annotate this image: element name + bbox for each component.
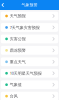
button[interactable]: 重点天气: [1, 57, 58, 66]
staticText: 霜冻预警: [10, 48, 26, 53]
staticText: 天气预报: [10, 13, 26, 18]
staticText: 7天气象灾害预报: [10, 25, 40, 30]
button[interactable]: 10天明星天气预报: [1, 69, 58, 78]
staticText: 重点天气: [10, 59, 26, 64]
button[interactable]: 7天气象灾害预报: [1, 23, 58, 32]
button[interactable]: 霜冻预警: [1, 46, 58, 55]
staticText: 气象预警: [21, 2, 37, 7]
staticText: 灾害公报: [10, 36, 26, 41]
staticText: 气象值: [10, 82, 22, 87]
button[interactable]: 气象值: [1, 80, 58, 89]
button[interactable]: Back: [0, 0, 9, 10]
button[interactable]: 台风: [1, 92, 58, 100]
staticText: 10天明星天气预报: [10, 71, 42, 76]
button[interactable]: 天气预报: [1, 12, 58, 20]
staticText: 台风: [10, 94, 18, 99]
button[interactable]: 灾害公报: [1, 34, 58, 43]
